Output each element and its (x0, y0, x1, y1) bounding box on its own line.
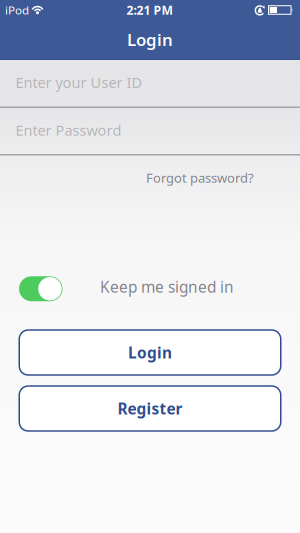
staticText: iPod (5, 2, 29, 18)
button[interactable]: Enter your User ID (0, 60, 300, 106)
staticText: Login (127, 28, 173, 51)
button[interactable]: Keep me signed in (19, 276, 62, 301)
button[interactable]: Register (18, 385, 281, 432)
staticText: Register (117, 398, 182, 419)
staticText: Keep me signed in (100, 276, 234, 297)
staticText: Enter Password (15, 120, 121, 140)
staticText: 2:21 PM (126, 2, 173, 18)
staticText: Login (128, 342, 172, 363)
button[interactable]: Enter Password (0, 108, 300, 154)
button[interactable]: Login (18, 329, 281, 376)
staticText: Forgot password? (146, 169, 254, 186)
button[interactable]: Forgot password? (146, 169, 254, 186)
staticText: Enter your User ID (15, 73, 142, 92)
